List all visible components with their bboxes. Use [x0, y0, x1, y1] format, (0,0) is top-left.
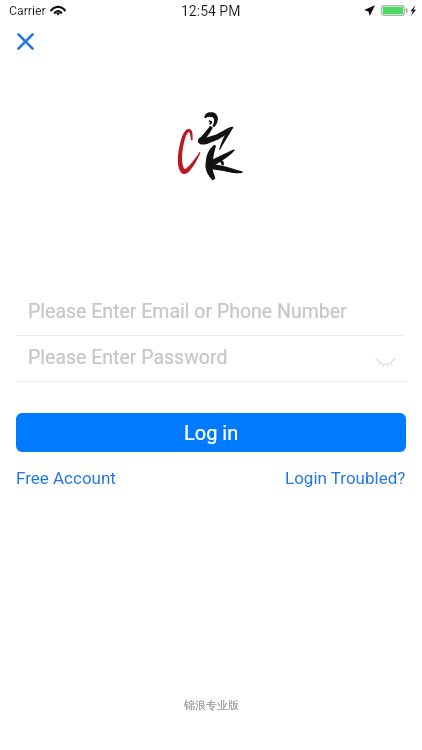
staticText: Log in: [184, 421, 239, 444]
staticText: 12:54 PM: [181, 3, 241, 19]
button[interactable]: Show password: [371, 350, 400, 374]
other: Charging: [410, 5, 416, 16]
button[interactable]: Please Enter Email or Phone Number: [0, 300, 422, 335]
staticText: Login Troubled?: [285, 468, 406, 488]
other: Battery: [381, 5, 408, 16]
button[interactable]: Please Enter Password: [0, 346, 422, 381]
button[interactable]: Free Account: [16, 468, 116, 488]
staticText: Free Account: [16, 468, 116, 488]
other: Location: [364, 5, 375, 16]
button[interactable]: Log in: [16, 413, 406, 452]
button[interactable]: Login Troubled?: [285, 468, 406, 488]
button[interactable]: Close: [13, 29, 38, 54]
staticText: Please Enter Password: [28, 346, 228, 369]
staticText: 锦浪专业版: [184, 698, 239, 712]
staticText: Carrier: [9, 4, 46, 18]
staticText: Please Enter Email or Phone Number: [28, 300, 347, 323]
